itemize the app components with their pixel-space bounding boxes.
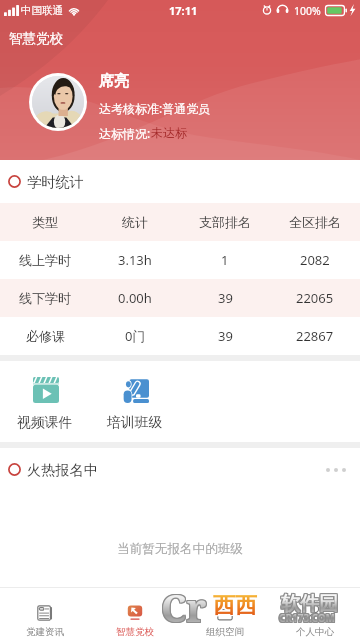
staticText: 软件园 bbox=[280, 591, 337, 615]
staticText: 西西 bbox=[212, 592, 256, 620]
staticText: 西西 bbox=[214, 591, 258, 619]
staticText: Cr bbox=[160, 581, 206, 633]
staticText: CR173.COM bbox=[280, 610, 337, 624]
staticText: 软件园 bbox=[282, 592, 339, 616]
staticText: 软件园 bbox=[282, 593, 339, 617]
staticText: Cr bbox=[161, 582, 207, 634]
staticText: 个人中心 bbox=[296, 626, 334, 638]
staticText: 17:11 bbox=[169, 3, 198, 18]
staticText: 当前暂无报名中的班级 bbox=[117, 541, 243, 557]
staticText: 软件园 bbox=[282, 591, 339, 615]
staticText: 1 bbox=[221, 251, 229, 269]
staticText: 西西 bbox=[213, 593, 257, 621]
staticText: 培训班级 bbox=[107, 414, 163, 431]
staticText: 达考核标准:普通党员 bbox=[99, 100, 211, 116]
staticText: 中国联通 bbox=[21, 4, 63, 17]
staticText: 0门 bbox=[125, 327, 146, 345]
staticText: CR173.COM bbox=[279, 611, 336, 625]
staticText: 学时统计 bbox=[27, 173, 84, 191]
staticText: Cr bbox=[160, 582, 206, 634]
staticText: 软件园 bbox=[280, 592, 337, 616]
button[interactable]: 智慧党校 bbox=[90, 587, 180, 639]
button[interactable]: 视频课件 bbox=[0, 361, 90, 442]
staticText: CR173.COM bbox=[278, 611, 335, 625]
staticText: 西西 bbox=[212, 591, 256, 619]
staticText: CR173.COM bbox=[280, 612, 337, 626]
staticText: 支部排名 bbox=[199, 214, 251, 230]
staticText: 视频课件 bbox=[17, 414, 73, 431]
staticText: Cr bbox=[161, 580, 207, 632]
staticText: Cr bbox=[162, 580, 208, 632]
staticText: 线下学时 bbox=[19, 290, 71, 306]
staticText: 39 bbox=[218, 289, 233, 307]
staticText: 党建资讯 bbox=[26, 626, 64, 638]
staticText: 火热报名中 bbox=[27, 461, 98, 479]
staticText: 39 bbox=[218, 327, 233, 345]
staticText: 智慧党校 bbox=[116, 626, 154, 638]
staticText: 3.13h bbox=[118, 251, 152, 269]
button[interactable]: More bbox=[312, 456, 360, 484]
staticText: 软件园 bbox=[280, 593, 337, 617]
staticText: 达标情况: bbox=[99, 125, 151, 141]
staticText: CR173.COM bbox=[280, 611, 337, 625]
button[interactable]: 培训班级 bbox=[90, 361, 180, 442]
staticText: Cr bbox=[161, 581, 207, 633]
staticText: 软件园 bbox=[281, 591, 338, 615]
staticText: 22065 bbox=[296, 289, 334, 307]
button[interactable]: 个人中心 bbox=[270, 587, 360, 639]
staticText: 西西 bbox=[212, 593, 256, 621]
staticText: 西西 bbox=[213, 591, 257, 619]
staticText: 22867 bbox=[296, 327, 334, 345]
staticText: Cr bbox=[160, 580, 206, 632]
staticText: CR173.COM bbox=[279, 612, 336, 626]
staticText: 线上学时 bbox=[19, 252, 71, 268]
staticText: 软件园 bbox=[281, 593, 338, 617]
button[interactable]: 组织空间 bbox=[180, 587, 270, 639]
staticText: CR173.COM bbox=[278, 612, 335, 626]
staticText: 软件园 bbox=[281, 592, 338, 616]
staticText: 西西 bbox=[214, 592, 258, 620]
staticText: Cr bbox=[162, 582, 208, 634]
staticText: 组织空间 bbox=[206, 626, 244, 638]
staticText: 西西 bbox=[214, 593, 258, 621]
staticText: 席亮 bbox=[99, 72, 129, 91]
staticText: 统计 bbox=[122, 214, 148, 230]
staticText: CR173.COM bbox=[279, 610, 336, 624]
staticText: 必修课 bbox=[26, 328, 65, 344]
staticText: 0.00h bbox=[118, 289, 152, 307]
staticText: 未达标 bbox=[151, 125, 187, 140]
staticText: 100% bbox=[294, 4, 321, 18]
staticText: 智慧党校 bbox=[9, 30, 63, 47]
staticText: 类型 bbox=[32, 214, 58, 230]
button[interactable]: 党建资讯 bbox=[0, 587, 90, 639]
staticText: 2082 bbox=[300, 251, 330, 269]
staticText: 全区排名 bbox=[289, 214, 341, 230]
staticText: Cr bbox=[162, 581, 208, 633]
staticText: 西西 bbox=[213, 592, 257, 620]
staticText: CR173.COM bbox=[278, 610, 335, 624]
